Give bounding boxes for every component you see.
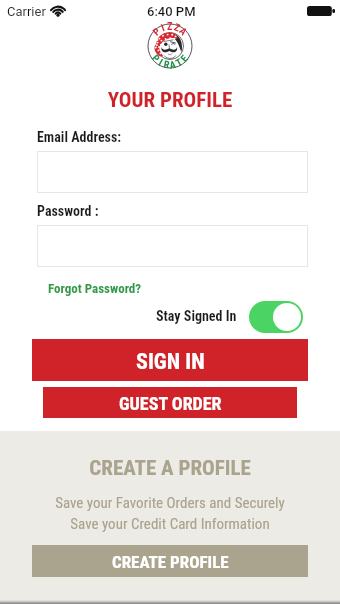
staticText: 6:40 PM [147, 4, 196, 19]
staticText: YOUR PROFILE [0, 88, 340, 113]
button[interactable] [37, 225, 308, 267]
staticText: Save your Favorite Orders and Securely S… [0, 494, 340, 533]
button[interactable]: Stay Signed In toggle [249, 301, 303, 333]
staticText: CREATE A PROFILE [0, 456, 340, 481]
button[interactable]: GUEST ORDER [43, 387, 297, 418]
staticText: CREATE PROFILE [112, 552, 229, 572]
other: Pizza Pirate logo [146, 22, 194, 70]
staticText: Forgot Password? [48, 281, 142, 296]
staticText: SIGN IN [136, 349, 205, 375]
staticText: Password : [37, 203, 99, 219]
staticText: Stay Signed In [156, 308, 237, 324]
button[interactable]: CREATE PROFILE [32, 545, 308, 577]
button[interactable]: Forgot Password? [48, 281, 142, 296]
button[interactable]: SIGN IN [32, 339, 308, 381]
staticText: GUEST ORDER [119, 393, 222, 414]
staticText: Email Address: [37, 129, 122, 145]
button[interactable] [37, 151, 308, 193]
staticText: Carrier [7, 4, 46, 19]
